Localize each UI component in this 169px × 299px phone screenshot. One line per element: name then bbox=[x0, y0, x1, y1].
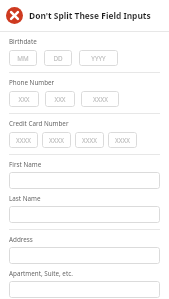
staticText: Last Name bbox=[9, 194, 41, 203]
staticText: Address bbox=[9, 235, 33, 244]
button[interactable]: XXXX bbox=[42, 132, 71, 148]
button[interactable] bbox=[9, 206, 160, 223]
staticText: XXXX bbox=[16, 136, 31, 145]
button[interactable]: Error bbox=[0, 0, 169, 31]
other: Error bbox=[6, 7, 23, 24]
button[interactable]: XXXX bbox=[75, 132, 104, 148]
staticText: MM bbox=[17, 54, 29, 63]
staticText: First Name bbox=[9, 160, 42, 169]
button[interactable]: YYYY bbox=[79, 50, 118, 66]
button[interactable]: DD bbox=[44, 50, 72, 66]
staticText: DD bbox=[53, 54, 63, 63]
staticText: Credit Card Number bbox=[9, 119, 69, 128]
staticText: Phone Number bbox=[9, 78, 55, 87]
staticText: Birthdate bbox=[9, 37, 37, 46]
button[interactable]: XXXX bbox=[9, 132, 38, 148]
button[interactable] bbox=[9, 281, 160, 298]
button[interactable]: XXX bbox=[9, 91, 39, 107]
staticText: Apartment, Suite, etc. bbox=[9, 269, 73, 278]
button[interactable]: XXX bbox=[45, 91, 75, 107]
button[interactable] bbox=[9, 172, 160, 189]
staticText: Don't Split These Field Inputs bbox=[29, 10, 151, 21]
button[interactable]: XXXX bbox=[81, 91, 119, 107]
staticText: XXXX bbox=[93, 95, 108, 104]
staticText: XXX bbox=[54, 95, 66, 104]
button[interactable] bbox=[9, 247, 160, 264]
staticText: XXXX bbox=[49, 136, 64, 145]
staticText: YYYY bbox=[91, 54, 106, 63]
button[interactable]: XXXX bbox=[108, 132, 137, 148]
button[interactable]: MM bbox=[9, 50, 37, 66]
staticText: XXXX bbox=[82, 136, 97, 145]
staticText: XXXX bbox=[115, 136, 130, 145]
staticText: XXX bbox=[18, 95, 30, 104]
